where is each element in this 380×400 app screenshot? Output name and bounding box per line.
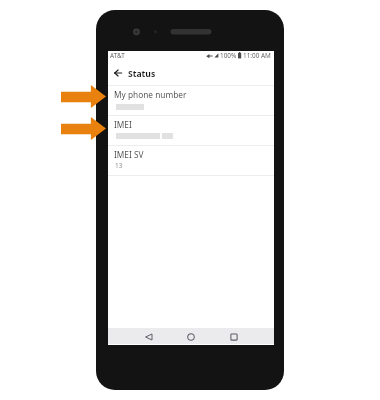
staticText: Status: [128, 68, 156, 80]
button[interactable]: My phone number: [108, 85, 274, 115]
staticText: 13: [115, 161, 123, 170]
button[interactable]: Navigate up: [110, 65, 126, 81]
button[interactable]: Back: [132, 330, 166, 344]
staticText: AT&T: [110, 51, 125, 60]
button[interactable]: Home: [174, 330, 208, 344]
button[interactable]: IMEI: [108, 115, 274, 145]
staticText: My phone number: [114, 89, 187, 100]
staticText: IMEI SV: [114, 149, 144, 160]
button[interactable]: IMEI SV: [108, 145, 274, 175]
staticText: 100%: [220, 51, 237, 60]
staticText: 11:00 AM: [243, 51, 271, 60]
button[interactable]: Recent apps: [217, 330, 251, 344]
staticText: IMEI: [114, 119, 132, 130]
